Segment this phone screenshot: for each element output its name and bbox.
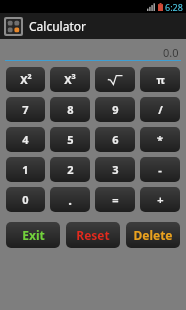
button[interactable]: 5 — [50, 127, 90, 152]
staticText: . — [68, 191, 72, 209]
button[interactable]: X² — [6, 67, 45, 92]
button[interactable]: X³ — [50, 67, 90, 92]
button[interactable]: 0 — [6, 187, 45, 212]
button[interactable]: Reset — [66, 222, 120, 248]
staticText: Reset — [76, 227, 110, 243]
staticText: X² — [20, 72, 32, 87]
button[interactable]: / — [140, 97, 180, 122]
staticText: 2 — [67, 162, 74, 177]
button[interactable]: 3 — [95, 157, 135, 182]
staticText: * — [157, 132, 163, 147]
staticText: Delete — [133, 227, 173, 243]
staticText: 5 — [67, 132, 74, 147]
button[interactable]: 4 — [6, 127, 45, 152]
staticText: 4 — [22, 132, 29, 147]
button[interactable]: + — [140, 187, 180, 212]
staticText: / — [158, 102, 163, 117]
staticText: 0.0 — [163, 45, 179, 60]
button[interactable]: Exit — [6, 222, 60, 248]
staticText: Exit — [22, 227, 45, 243]
button[interactable]: Delete — [126, 222, 180, 248]
staticText: = — [112, 192, 119, 207]
staticText: 6 — [112, 132, 119, 147]
button[interactable]: - — [140, 157, 180, 182]
button[interactable]: Square root — [95, 67, 135, 92]
button[interactable]: 1 — [6, 157, 45, 182]
button[interactable]: = — [95, 187, 135, 212]
staticText: 8 — [67, 102, 74, 117]
button[interactable]: 8 — [50, 97, 90, 122]
staticText: - — [158, 162, 162, 177]
button[interactable]: π — [140, 67, 180, 92]
button[interactable]: 9 — [95, 97, 135, 122]
button[interactable]: 6 — [95, 127, 135, 152]
button[interactable]: 7 — [6, 97, 45, 122]
staticText: π — [156, 72, 165, 87]
staticText: 0 — [22, 192, 29, 207]
staticText: 9 — [112, 102, 119, 117]
button[interactable]: * — [140, 127, 180, 152]
button[interactable]: . — [50, 187, 90, 212]
staticText: 6:28 — [165, 1, 183, 13]
button[interactable]: 2 — [50, 157, 90, 182]
staticText: 1 — [22, 162, 29, 177]
staticText: Calculator — [29, 18, 86, 34]
staticText: 3 — [112, 162, 119, 177]
staticText: X³ — [64, 72, 76, 87]
staticText: 7 — [22, 102, 29, 117]
staticText: + — [157, 192, 164, 207]
